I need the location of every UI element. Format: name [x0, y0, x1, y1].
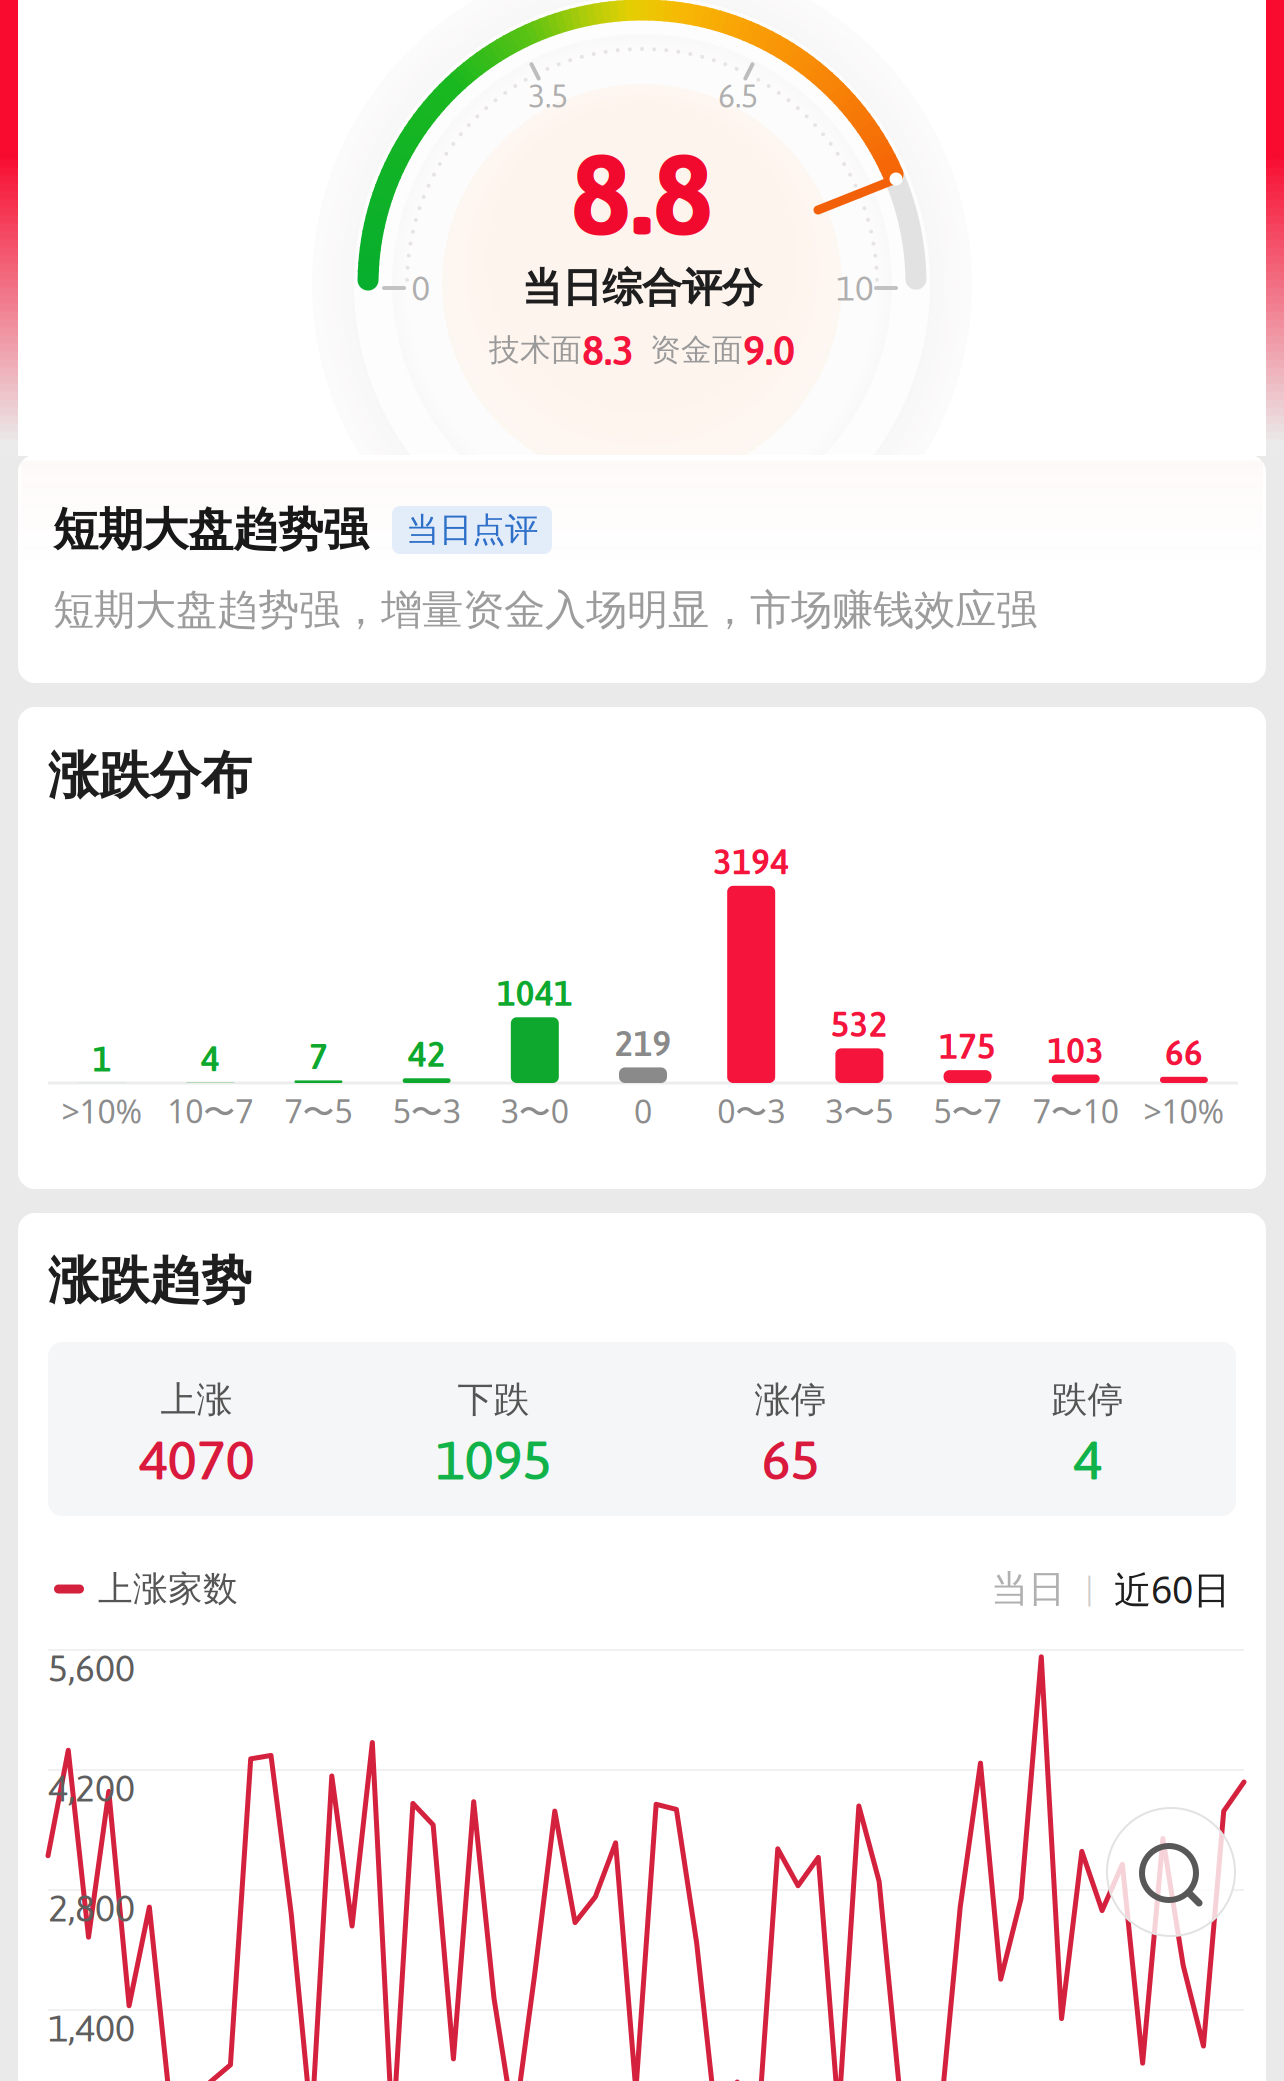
staticText: 9.0 [743, 326, 795, 374]
staticText: 3.5 [528, 78, 568, 114]
staticText: 1041 [497, 973, 573, 1013]
staticText: 0〜3 [717, 1089, 785, 1133]
staticText: 7〜5 [284, 1089, 352, 1133]
staticText: 5,600 [48, 1647, 135, 1689]
staticText: 219 [614, 1024, 671, 1063]
staticText: 10 [836, 268, 874, 308]
staticText: 6.5 [718, 78, 758, 114]
staticText: 下跌 [457, 1377, 529, 1422]
staticText: 上涨 [160, 1377, 232, 1422]
staticText: 10〜7 [167, 1089, 253, 1133]
staticText: >10% [62, 1089, 143, 1133]
button[interactable]: 短期大盘趋势强 [0, 0, 1284, 2081]
staticText: 65 [761, 1428, 819, 1491]
staticText: 4 [1073, 1428, 1102, 1491]
staticText: | [1085, 1569, 1094, 1609]
staticText: 103 [1047, 1031, 1104, 1070]
staticText: >10% [1143, 1089, 1224, 1133]
staticText: 4070 [138, 1428, 254, 1491]
staticText: 1,400 [48, 2007, 135, 2049]
staticText: 42 [408, 1034, 446, 1074]
staticText: 0 [634, 1089, 652, 1133]
button[interactable]: 当日 [991, 1565, 1065, 1612]
staticText: 涨跌趋势 [48, 1249, 252, 1313]
staticText: 532 [831, 1004, 888, 1044]
staticText: 66 [1165, 1033, 1203, 1073]
staticText: 7 [309, 1036, 328, 1076]
staticText: 5〜7 [933, 1089, 1001, 1133]
staticText: 8.8 [571, 130, 713, 258]
staticText: 4,200 [48, 1767, 135, 1809]
staticText: 8.3 [582, 326, 634, 374]
staticText: 1 [93, 1039, 112, 1079]
staticText: 跌停 [1051, 1377, 1123, 1422]
staticText: 5〜3 [393, 1089, 461, 1133]
staticText: 短期大盘趋势强，增量资金入场明显，市场赚钱效应强 [53, 584, 1037, 636]
staticText: 当日点评 [406, 509, 538, 551]
staticText: 2,800 [48, 1887, 135, 1929]
staticText: 175 [939, 1026, 996, 1066]
staticText: 当日 [991, 1565, 1065, 1612]
staticText: 4 [201, 1039, 220, 1079]
staticText: 1095 [435, 1428, 551, 1491]
staticText: 短期大盘趋势强 [53, 501, 368, 558]
button[interactable]: 近60日 [1114, 1564, 1230, 1614]
staticText: 近60日 [1114, 1564, 1230, 1614]
staticText: 3〜0 [501, 1089, 569, 1133]
staticText: 3194 [713, 842, 789, 882]
staticText: 资金面 [650, 331, 743, 369]
staticText: 技术面 [489, 331, 582, 369]
staticText: 上涨家数 [98, 1567, 238, 1611]
staticText: 3〜5 [825, 1089, 893, 1133]
staticText: 7〜10 [1033, 1089, 1119, 1133]
staticText: 涨停 [754, 1377, 826, 1422]
staticText: 0 [411, 268, 430, 308]
staticText: 涨跌分布 [48, 744, 252, 808]
staticText: 当日综合评分 [522, 263, 762, 313]
